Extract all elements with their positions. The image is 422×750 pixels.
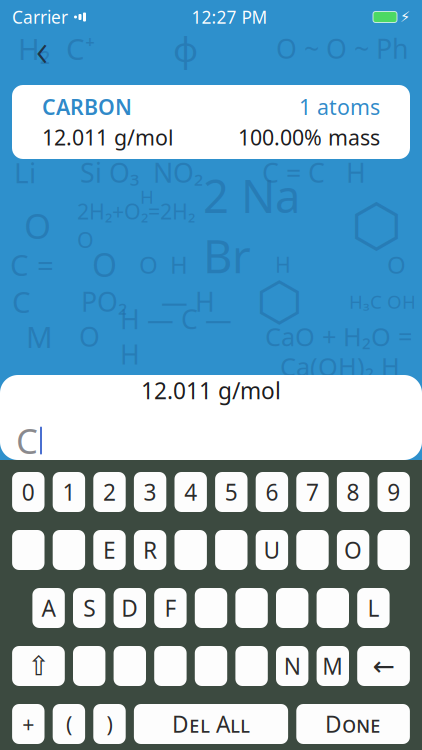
button[interactable] [235, 646, 268, 686]
staticText: 9 [387, 477, 400, 507]
staticText: 12:27 PM [191, 5, 267, 28]
staticText: 1 [62, 477, 75, 507]
staticText: 7 [306, 477, 319, 507]
staticText: F [164, 593, 176, 623]
button[interactable]: 9 [377, 472, 410, 512]
staticText: 1 atoms [299, 93, 380, 121]
staticText: C [16, 417, 38, 463]
staticText: Li [14, 154, 36, 191]
button[interactable] [12, 530, 44, 570]
button[interactable] [215, 530, 247, 570]
staticText: ϕ [173, 25, 198, 71]
staticText: 5 [225, 477, 238, 507]
staticText: H₂ C⁺ [18, 29, 95, 68]
button[interactable]: 2 [93, 472, 126, 512]
button[interactable] [53, 530, 85, 570]
staticText: Ca(OH)₂ H [280, 350, 400, 383]
staticText: U [263, 535, 280, 565]
staticText: O ~ O ~ Ph [276, 31, 408, 66]
staticText: H₃C OH [349, 289, 416, 314]
staticText: ⇧ [27, 651, 49, 681]
staticText: ⚡︎ [400, 9, 410, 25]
button[interactable]: O [337, 530, 369, 570]
staticText: 0 [22, 477, 35, 507]
button[interactable]: 7 [296, 472, 329, 512]
staticText: CaO + H₂O = [265, 320, 412, 353]
staticText: C = [10, 245, 54, 284]
button[interactable]: ) [93, 704, 126, 744]
button[interactable]: 8 [337, 472, 369, 512]
button[interactable]: ← [357, 646, 410, 686]
button[interactable] [235, 588, 268, 628]
button[interactable]: 6 [256, 472, 288, 512]
staticText: L [367, 593, 379, 623]
button[interactable]: D [114, 588, 146, 628]
staticText: 12.011 g/mol [141, 375, 281, 405]
staticText: M [26, 317, 53, 356]
button[interactable] [377, 530, 410, 570]
staticText: ) [106, 710, 112, 738]
staticText: O [92, 243, 117, 286]
button[interactable]: E [93, 530, 126, 570]
staticText: 2 Na Br [203, 165, 300, 286]
staticText: 8 [347, 477, 360, 507]
button[interactable]: Back [22, 29, 62, 69]
button[interactable]: 4 [174, 472, 207, 512]
button[interactable]: R [134, 530, 166, 570]
staticText: CARBON [42, 93, 132, 121]
staticText: 12.011 g/mol [42, 123, 174, 151]
button[interactable]: ( [53, 704, 85, 744]
staticText: ‹ [36, 19, 48, 79]
button[interactable]: N [276, 646, 308, 686]
button[interactable]: + [12, 704, 44, 744]
staticText: + [22, 710, 34, 738]
button[interactable]: 0 [12, 472, 44, 512]
staticText: N [284, 651, 301, 681]
staticText: ← [373, 651, 395, 681]
button[interactable]: S [73, 588, 105, 628]
staticText: — H [161, 284, 215, 319]
staticText: 6 [265, 477, 278, 507]
button[interactable] [154, 646, 187, 686]
staticText: ⬡ [256, 271, 303, 332]
staticText: ( [66, 710, 72, 738]
staticText: R [143, 535, 157, 565]
button[interactable]: Dᴏɴᴇ [296, 704, 410, 744]
staticText: M [322, 651, 343, 681]
button[interactable]: L [357, 588, 390, 628]
button[interactable] [276, 588, 308, 628]
staticText: Carrier [12, 5, 68, 28]
staticText: C = C H [262, 155, 366, 190]
staticText: C [12, 282, 31, 321]
staticText: ⬡ [351, 192, 402, 259]
button[interactable]: Dᴇʟ Aʟʟ [134, 704, 288, 744]
staticText: 2H₂+O₂=2H₂O [77, 197, 195, 254]
staticText: A [42, 593, 56, 623]
button[interactable] [195, 588, 227, 628]
button[interactable]: M [317, 646, 349, 686]
button[interactable]: A [32, 588, 65, 628]
staticText: H [140, 184, 154, 209]
staticText: O [24, 202, 51, 248]
staticText: O H [139, 249, 188, 280]
button[interactable] [195, 646, 227, 686]
button[interactable]: ⇧ [12, 646, 65, 686]
staticText: 2 [103, 477, 116, 507]
button[interactable] [114, 646, 146, 686]
staticText: Dᴇʟ Aʟʟ [172, 709, 250, 739]
button[interactable] [174, 530, 207, 570]
button[interactable]: 5 [215, 472, 247, 512]
button[interactable]: 3 [134, 472, 166, 512]
staticText: S [83, 593, 95, 623]
button[interactable] [317, 588, 349, 628]
button[interactable] [73, 646, 105, 686]
staticText: H [275, 250, 291, 279]
button[interactable]: U [256, 530, 288, 570]
staticText: 4 [184, 477, 197, 507]
staticText: O [79, 319, 100, 354]
button[interactable]: F [154, 588, 187, 628]
staticText: PO₂ [81, 284, 127, 319]
staticText: O [344, 535, 362, 565]
button[interactable]: 1 [53, 472, 85, 512]
button[interactable] [296, 530, 329, 570]
